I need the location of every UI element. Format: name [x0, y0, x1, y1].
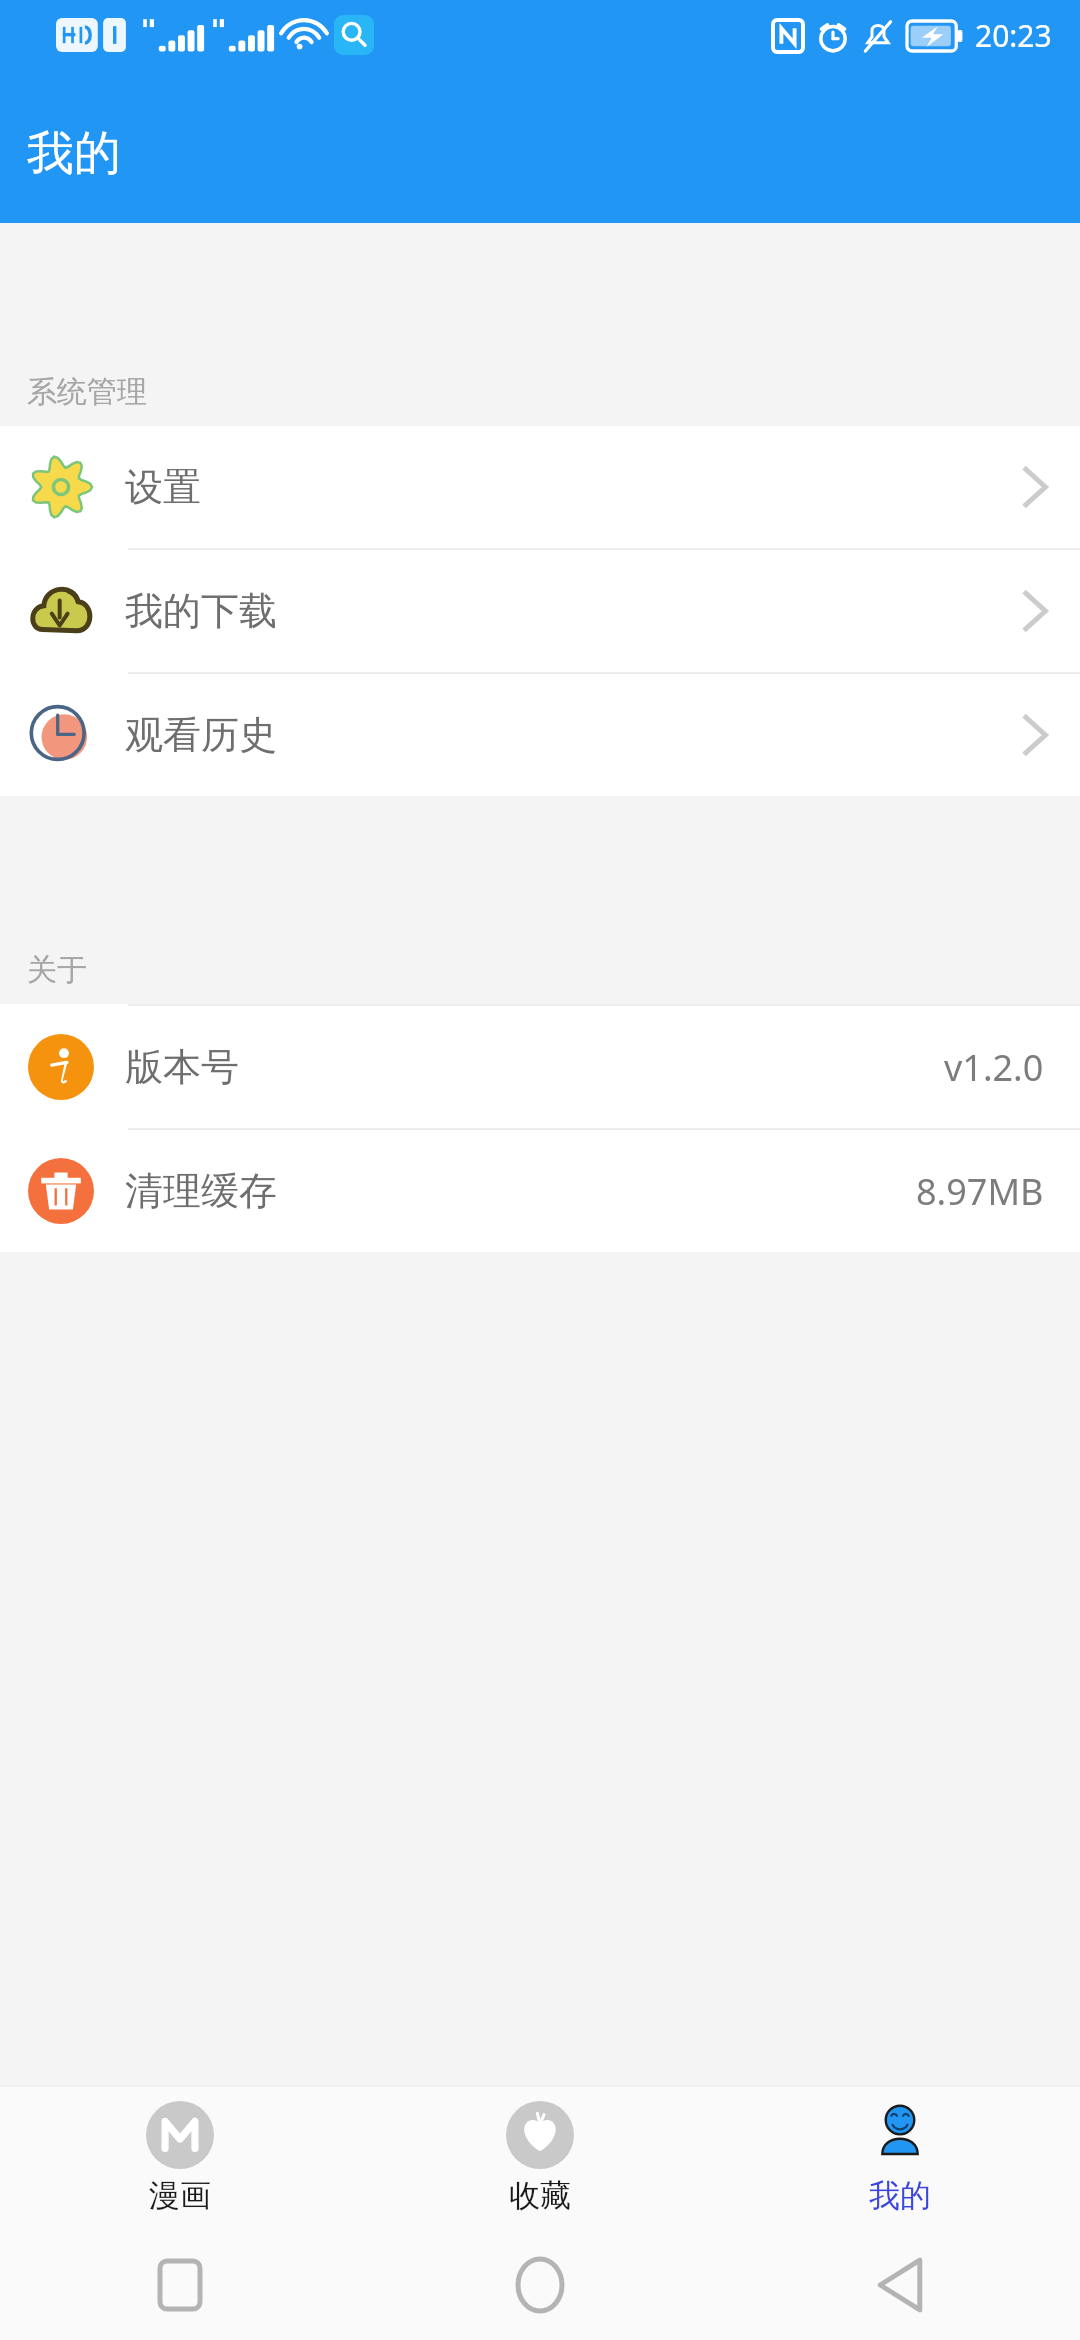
staticText: 收藏 — [509, 2176, 571, 2215]
staticText: 版本号 — [125, 1043, 239, 1091]
staticText: 20:23 — [975, 15, 1052, 56]
staticText: 8.97MB — [916, 1167, 1044, 1216]
other: Home — [518, 2259, 562, 2311]
button[interactable]: 清理缓存 — [0, 1130, 1080, 1252]
button[interactable]: 设置 — [0, 426, 1080, 548]
button[interactable]: 我的 — [720, 2085, 1080, 2230]
button[interactable]: 版本号 — [0, 1006, 1080, 1128]
staticText: 设置 — [125, 463, 201, 511]
staticText: 系统管理 — [27, 373, 147, 411]
staticText: 观看历史 — [125, 711, 277, 759]
staticText: v1.2.0 — [944, 1043, 1044, 1092]
button[interactable]: 收藏 — [360, 2085, 720, 2230]
other: Recents — [160, 2261, 200, 2309]
button[interactable]: 漫画 — [0, 2085, 360, 2230]
staticText: 我的 — [869, 2176, 931, 2215]
other: Back — [878, 2259, 922, 2311]
staticText: 我的 — [27, 124, 121, 183]
staticText: 关于 — [27, 951, 87, 989]
button[interactable]: 观看历史 — [0, 674, 1080, 796]
staticText: 清理缓存 — [125, 1167, 277, 1215]
button[interactable]: 我的下载 — [0, 550, 1080, 672]
staticText: 我的下载 — [125, 587, 277, 635]
staticText: 漫画 — [149, 2176, 211, 2215]
